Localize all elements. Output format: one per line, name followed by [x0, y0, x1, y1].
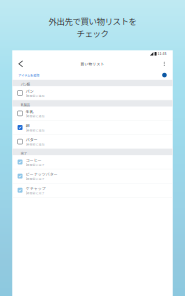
button[interactable]: Back	[15, 57, 26, 70]
button[interactable]: ピーナッツバター	[12, 169, 173, 183]
staticText: 3時間前に追加	[26, 128, 45, 132]
staticText: 3時間前に追加	[26, 114, 45, 118]
staticText: バター	[26, 137, 38, 142]
staticText: パン類	[21, 82, 30, 87]
staticText: 完了	[21, 151, 27, 156]
staticText: 牛乳	[26, 109, 34, 114]
staticText: アイテムを追加	[18, 73, 39, 77]
button[interactable]: コーヒー	[12, 155, 173, 169]
staticText: ケチャップ	[26, 185, 46, 191]
button[interactable]: 卵	[12, 121, 173, 135]
staticText: ピーナッツバター	[26, 171, 58, 177]
staticText: 乳製品	[21, 102, 30, 107]
button[interactable]: パン	[12, 86, 173, 100]
staticText: コーヒー	[26, 157, 42, 163]
staticText: 3時間前に追加	[26, 94, 45, 98]
staticText: 外出先で買い物リストを	[48, 15, 136, 27]
button[interactable]: 牛乳	[12, 106, 173, 121]
staticText: 1時間前に完了	[26, 177, 45, 181]
button[interactable]: バター	[12, 135, 173, 149]
staticText: 卵	[26, 123, 30, 128]
staticText: パン	[26, 88, 34, 94]
staticText: 1時間前に完了	[26, 163, 45, 167]
button[interactable]: More options	[159, 57, 170, 70]
staticText: 3時間前に追加	[26, 142, 45, 146]
button[interactable]: アイテムを追加	[12, 70, 173, 80]
staticText: チェック	[76, 27, 108, 39]
staticText: 1時間前に完了	[26, 191, 45, 195]
staticText: 買い物リスト	[80, 61, 104, 66]
button[interactable]: ケチャップ	[12, 183, 173, 197]
staticText: 11:35	[158, 52, 167, 56]
